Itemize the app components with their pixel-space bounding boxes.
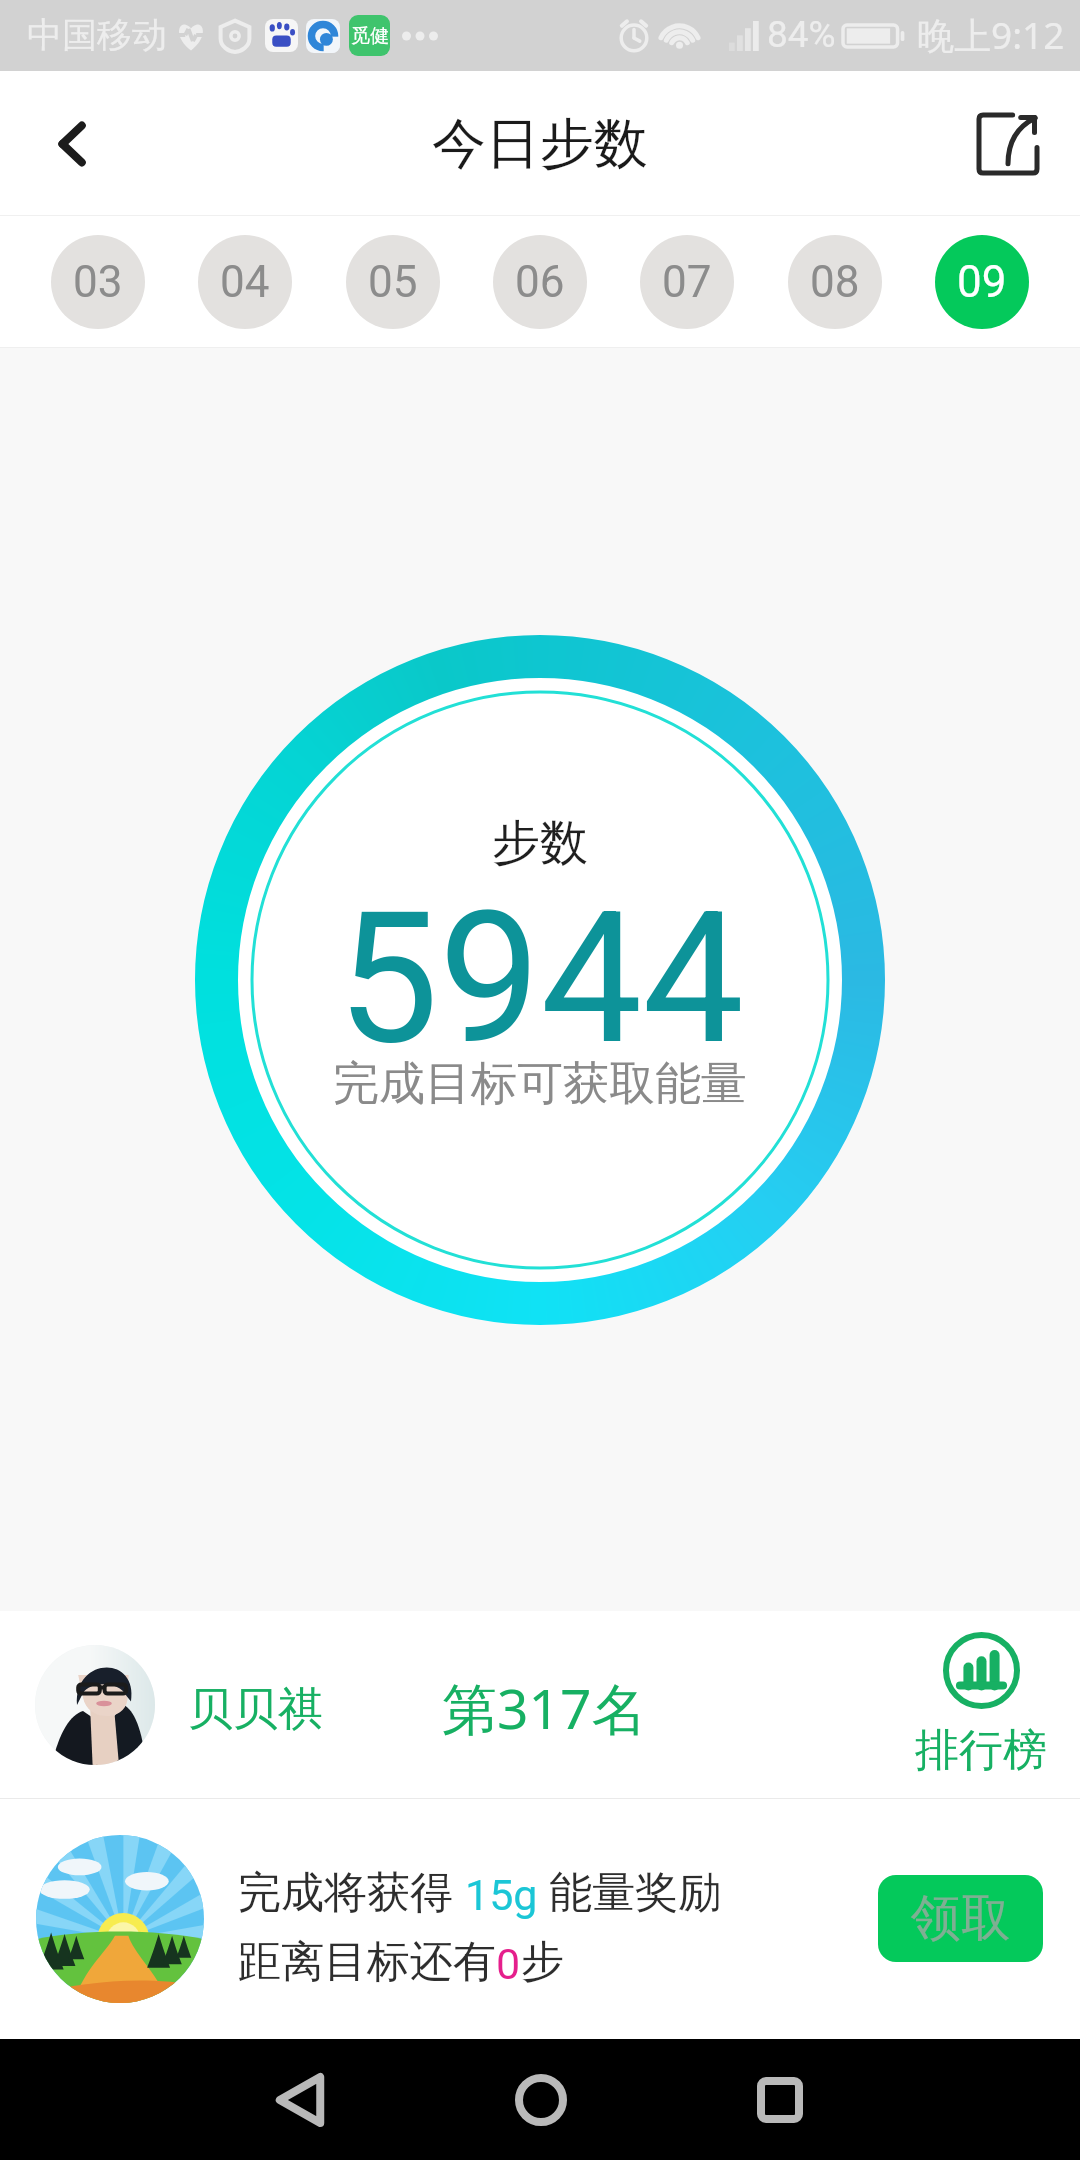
staticText: 15g: [465, 1870, 538, 1920]
staticText: 距离目标还有: [238, 1935, 496, 1989]
button[interactable]: 06: [493, 235, 587, 329]
button[interactable]: 领取: [878, 1875, 1043, 1962]
staticText: 08: [810, 256, 860, 308]
staticText: 觅健: [351, 24, 389, 48]
button[interactable]: 03: [51, 235, 145, 329]
button[interactable]: Back: [28, 99, 118, 189]
staticText: 04: [220, 256, 270, 308]
staticText: 84%: [767, 13, 836, 56]
staticText: 步数: [492, 813, 588, 873]
staticText: 晚上9:12: [917, 9, 1065, 60]
staticText: 0: [496, 1939, 521, 1989]
staticText: 领取: [911, 1887, 1011, 1950]
button[interactable]: 排行榜: [903, 1632, 1059, 1778]
staticText: 步: [521, 1935, 564, 1989]
button[interactable]: Energy reward: [36, 1835, 204, 2003]
button[interactable]: Back: [240, 2041, 360, 2159]
staticText: 5944: [337, 873, 744, 1085]
staticText: 完成将获得: [238, 1861, 465, 1920]
button[interactable]: 07: [640, 235, 734, 329]
button[interactable]: 05: [346, 235, 440, 329]
staticText: 07: [662, 256, 712, 308]
button[interactable]: Home: [481, 2041, 601, 2159]
button[interactable]: 08: [788, 235, 882, 329]
staticText: 完成目标可获取能量: [333, 1055, 747, 1113]
staticText: 09: [957, 256, 1007, 308]
button[interactable]: Profile photo: [35, 1645, 155, 1765]
staticText: 中国移动: [27, 13, 167, 57]
button[interactable]: Share: [963, 99, 1053, 189]
staticText: 能量奖励: [538, 1861, 722, 1920]
staticText: 05: [368, 256, 418, 308]
button[interactable]: Recents: [720, 2041, 840, 2159]
button[interactable]: 04: [198, 235, 292, 329]
staticText: 06: [515, 256, 565, 308]
staticText: 03: [73, 256, 123, 308]
staticText: 第317名: [442, 1670, 647, 1745]
staticText: 排行榜: [915, 1723, 1047, 1778]
button[interactable]: 09: [935, 235, 1029, 329]
staticText: 贝贝祺: [188, 1681, 323, 1738]
staticText: 今日步数: [432, 110, 648, 178]
